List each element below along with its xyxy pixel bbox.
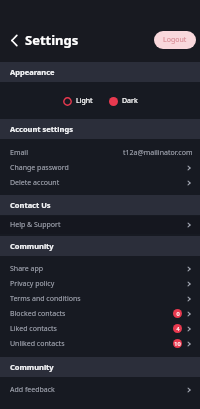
- button[interactable]: Delete account: [0, 175, 200, 190]
- button[interactable]: Unliked contacts: [0, 336, 200, 351]
- staticText: Terms and conditions: [10, 294, 81, 304]
- button[interactable]: Add feedback: [0, 382, 200, 397]
- button[interactable]: Change password: [0, 160, 200, 175]
- staticText: Light: [76, 96, 93, 106]
- staticText: Dark: [122, 96, 138, 106]
- staticText: Privacy policy: [10, 279, 55, 289]
- button[interactable]: Logout: [154, 31, 196, 49]
- staticText: t12a@mailinator.com: [123, 148, 193, 158]
- staticText: Appearance: [10, 67, 55, 77]
- staticText: 10: [174, 340, 181, 347]
- staticText: Share app: [10, 264, 44, 274]
- staticText: Unliked contacts: [10, 339, 65, 349]
- staticText: 4: [176, 325, 180, 332]
- staticText: Email: [10, 148, 28, 158]
- staticText: Add feedback: [10, 385, 55, 395]
- staticText: Change password: [10, 163, 69, 173]
- staticText: Account settings: [10, 124, 73, 134]
- button[interactable]: Dark: [109, 96, 138, 106]
- staticText: Community: [10, 241, 54, 251]
- staticText: Blocked contacts: [10, 309, 66, 319]
- staticText: 0: [176, 310, 180, 317]
- button[interactable]: Blocked contacts: [0, 306, 200, 321]
- button[interactable]: Light: [63, 96, 93, 106]
- staticText: Community: [10, 362, 54, 372]
- button[interactable]: Share app: [0, 261, 200, 276]
- staticText: Delete account: [10, 178, 60, 188]
- button[interactable]: Liked contacts: [0, 321, 200, 336]
- staticText: Help & Support: [10, 220, 61, 230]
- staticText: Settings: [25, 31, 79, 49]
- button[interactable]: Terms and conditions: [0, 291, 200, 306]
- button[interactable]: Help & Support: [0, 216, 200, 234]
- staticText: Liked contacts: [10, 324, 57, 334]
- button[interactable]: Privacy policy: [0, 276, 200, 291]
- staticText: Contact Us: [10, 200, 51, 210]
- button[interactable]: Back: [6, 32, 22, 48]
- staticText: Logout: [163, 35, 187, 45]
- button[interactable]: Email: [0, 145, 200, 160]
